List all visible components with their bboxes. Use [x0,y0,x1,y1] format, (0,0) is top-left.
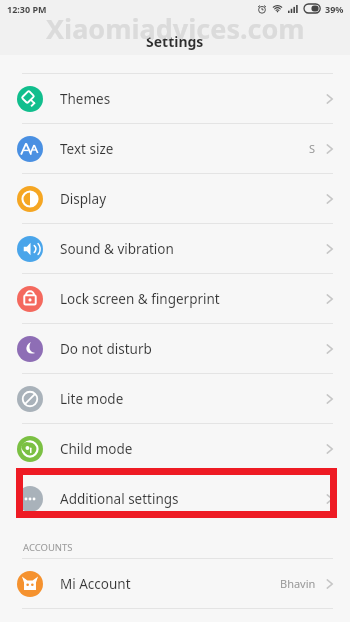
staticText: 39% [325,3,344,15]
button[interactable]: Text size [0,124,350,173]
button[interactable]: Additional settings [0,474,350,523]
button[interactable]: Sound & vibration [0,224,350,273]
button[interactable]: Lock screen & fingerprint [0,274,350,323]
staticText: ACCOUNTS [23,541,73,554]
button[interactable]: Child mode [0,424,350,473]
staticText: Themes [60,90,111,108]
staticText: Xiaomiadvices.com [46,10,305,47]
staticText: Text size [60,140,114,158]
button[interactable]: Themes [0,74,350,123]
staticText: Child mode [60,440,133,458]
button[interactable]: Lite mode [0,374,350,423]
button[interactable]: Do not disturb [0,324,350,373]
staticText: Additional settings [60,490,179,508]
staticText: Display [60,190,107,208]
staticText: Lock screen & fingerprint [60,290,220,308]
staticText: S [309,141,316,156]
button[interactable]: Mi Account [0,559,350,608]
staticText: Settings [146,32,204,51]
button[interactable]: Display [0,174,350,223]
staticText: Mi Account [60,575,131,593]
staticText: 12:30 PM [7,3,47,15]
staticText: Do not disturb [60,340,152,358]
staticText: Lite mode [60,390,124,408]
staticText: Bhavin [280,576,316,591]
staticText: Sound & vibration [60,240,174,258]
